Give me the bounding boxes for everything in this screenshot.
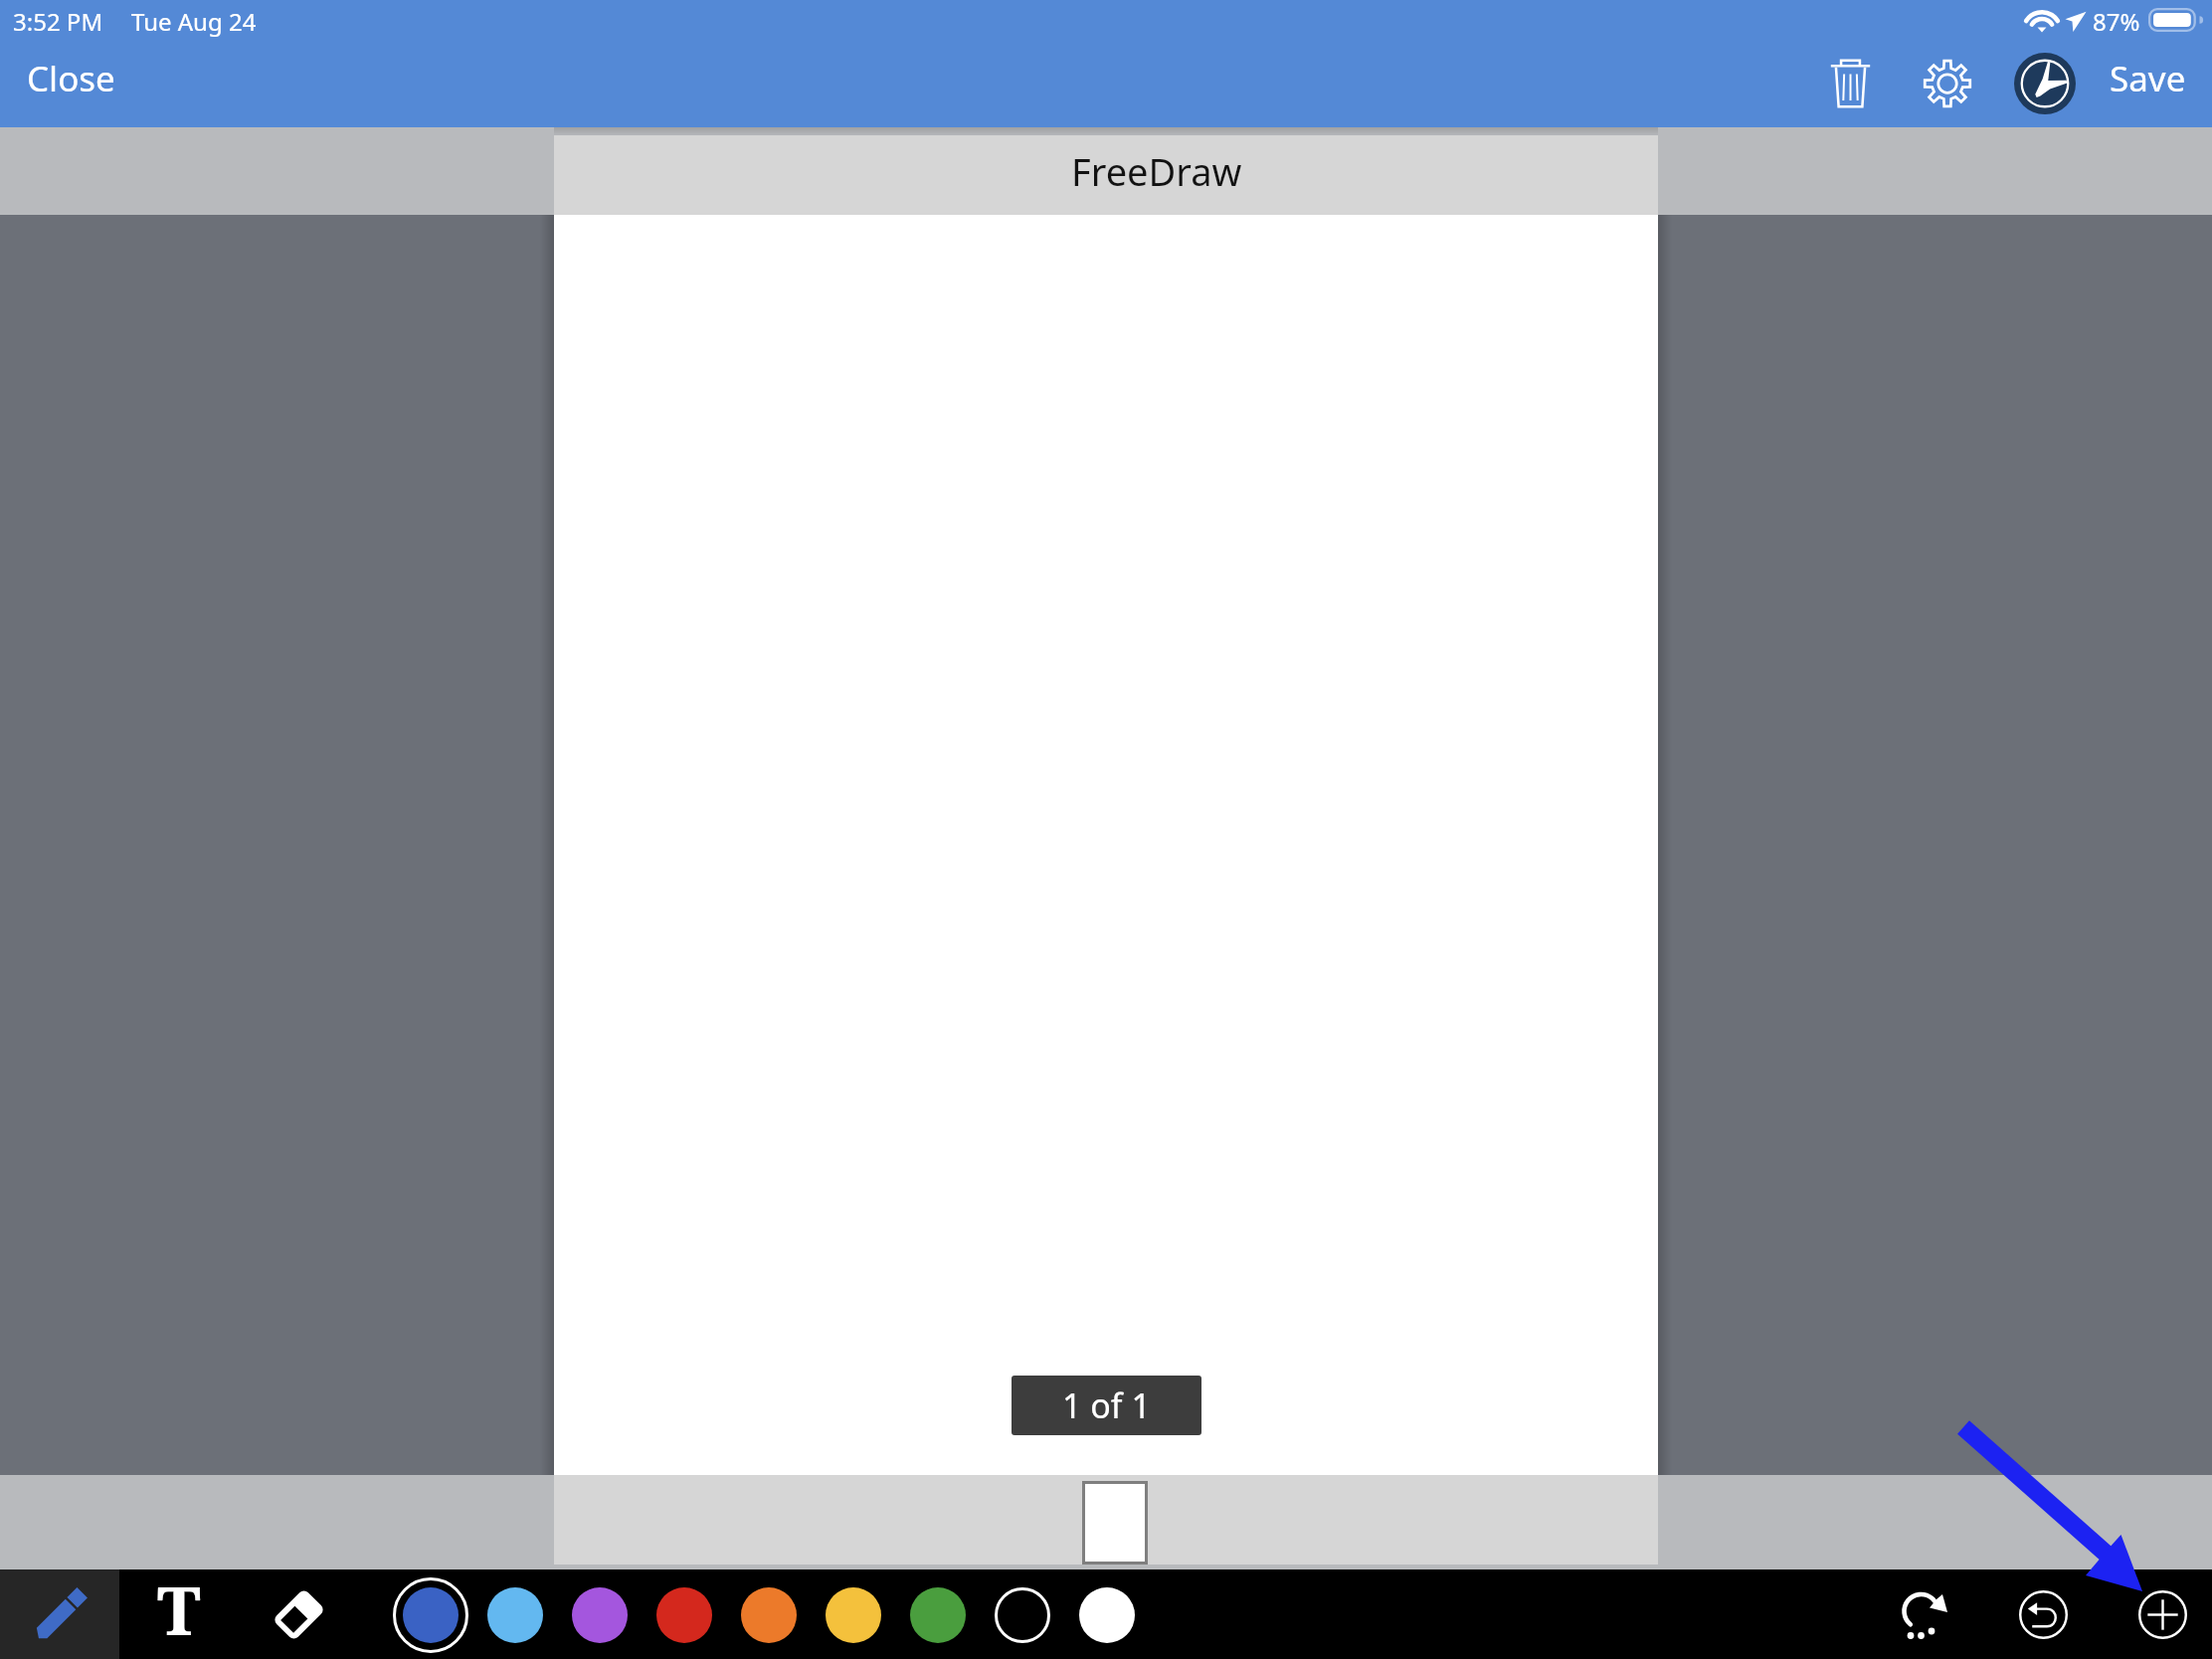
staticText: 87% [2093,5,2140,38]
button[interactable]: Color 5 [725,1570,813,1658]
staticText: 1 of 1 [1062,1382,1151,1428]
staticText: 3:52 PM [13,5,103,38]
button[interactable]: Color 3 [556,1570,644,1658]
staticText: FreeDraw [1071,145,1242,197]
button[interactable]: Eraser [254,1569,343,1659]
button[interactable]: Page 1 [1085,1484,1145,1562]
button[interactable]: Color 2 [471,1570,559,1658]
staticText: Save [2110,55,2186,102]
button[interactable]: Pen [0,1569,119,1659]
button[interactable]: Close [0,47,142,110]
button[interactable]: Color 6 [810,1570,897,1658]
button[interactable]: Add page [2118,1569,2207,1659]
button[interactable]: Undo [1998,1569,2088,1659]
staticText: Tue Aug 24 [131,5,257,38]
button[interactable]: Color 1 [387,1570,474,1658]
button[interactable]: Color 8 [979,1570,1066,1658]
button[interactable]: Text [134,1569,224,1659]
staticText: T [157,1564,201,1653]
button[interactable]: Color 9 [1063,1570,1151,1658]
button[interactable]: Delete [1805,39,1895,128]
button[interactable]: Color 4 [641,1570,728,1658]
staticText: Close [27,55,115,102]
button[interactable]: Save [2090,47,2206,110]
button[interactable]: Redo [1878,1569,1967,1659]
button[interactable]: Color 7 [894,1570,982,1658]
button[interactable]: Settings [1903,39,1992,128]
button[interactable]: Navigate [2000,39,2090,128]
